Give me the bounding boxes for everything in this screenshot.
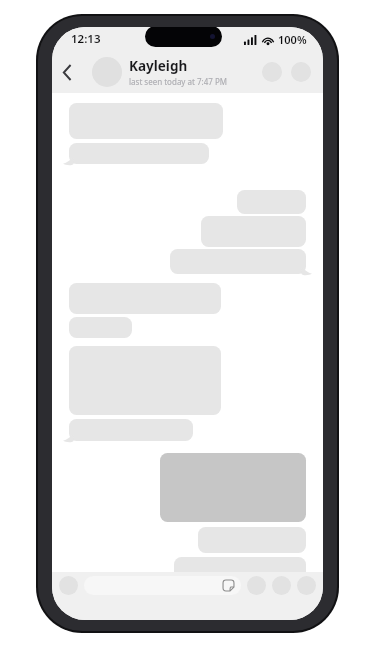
staticText: 100% (278, 32, 307, 47)
button[interactable]: Kayleigh (129, 57, 228, 87)
button[interactable]: Message (160, 453, 306, 522)
button[interactable]: Message (198, 527, 306, 553)
staticText: Kayleigh (129, 57, 188, 75)
button[interactable]: Camera (247, 576, 266, 595)
button[interactable]: Attach (59, 576, 78, 595)
button[interactable]: Profile photo (92, 57, 122, 87)
button[interactable]: Voice message (297, 576, 316, 595)
button[interactable]: Message (174, 557, 306, 583)
button[interactable]: Stickers (222, 579, 235, 592)
button[interactable]: Back (54, 59, 80, 85)
button[interactable]: Message (237, 190, 306, 214)
button[interactable]: Video call (262, 62, 282, 82)
button[interactable]: Message (69, 317, 132, 338)
button[interactable]: Gallery (272, 576, 291, 595)
button[interactable]: Voice call (291, 62, 311, 82)
staticText: last seen today at 7:47 PM (129, 76, 228, 87)
staticText: 12:13 (71, 31, 101, 47)
button[interactable]: Message input (84, 576, 241, 595)
